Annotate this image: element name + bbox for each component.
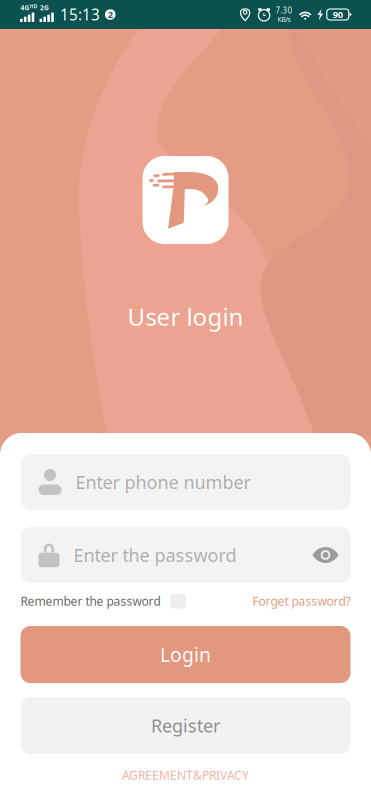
staticText: Enter phone number xyxy=(75,470,250,494)
button[interactable]: Login xyxy=(20,626,350,683)
staticText: Forget password? xyxy=(252,593,350,609)
staticText: HD xyxy=(30,3,38,10)
staticText: 2 xyxy=(108,8,113,21)
staticText: PRIVACY xyxy=(202,767,249,783)
staticText: 4G xyxy=(20,3,29,12)
staticText: Register xyxy=(151,713,220,738)
staticText: & xyxy=(193,767,202,783)
staticText: User login xyxy=(127,300,243,333)
staticText: KB/s xyxy=(278,15,291,24)
button[interactable]: Register xyxy=(20,697,350,754)
staticText: 90 xyxy=(333,8,343,21)
staticText: Remember the password xyxy=(20,593,160,609)
button[interactable]: PRIVACY xyxy=(202,767,249,783)
button[interactable]: Forget password? xyxy=(252,590,350,612)
staticText: Enter the password xyxy=(73,543,236,567)
staticText: Login xyxy=(160,641,211,668)
staticText: 7.30 xyxy=(276,5,293,16)
staticText: AGREEMENT xyxy=(122,767,193,783)
staticText: 15:13 xyxy=(60,4,100,25)
button[interactable]: Remember the password xyxy=(20,590,185,612)
button[interactable]: Show password xyxy=(308,535,342,575)
button[interactable]: AGREEMENT xyxy=(122,767,193,783)
staticText: 2G xyxy=(40,3,49,12)
